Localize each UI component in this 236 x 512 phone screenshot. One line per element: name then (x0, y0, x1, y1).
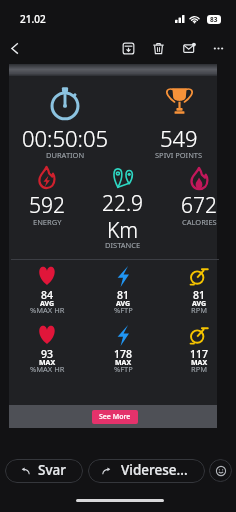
staticText: 21.02 (20, 12, 46, 26)
button[interactable]: Mark unread (179, 38, 199, 58)
staticText: 81 (117, 288, 130, 302)
button[interactable]: More options (208, 38, 228, 58)
staticText: 00:50:05 (22, 123, 109, 153)
staticText: 117 (190, 347, 209, 361)
staticText: Viderese... (121, 461, 188, 479)
staticText: DISTANCE (105, 240, 141, 250)
staticText: AVG (116, 299, 131, 309)
staticText: DURATION (46, 150, 85, 160)
button[interactable]: Emoji reply (209, 459, 232, 482)
staticText: %MAX HR (30, 364, 65, 374)
staticText: 83 (210, 15, 218, 24)
staticText: ENERGY (33, 217, 62, 227)
staticText: CALORIES (182, 217, 217, 227)
button[interactable]: Archive (118, 38, 138, 58)
staticText: RPM (191, 364, 208, 374)
staticText: MAX (191, 358, 208, 368)
button[interactable]: See More (92, 410, 138, 424)
staticText: Km (107, 216, 139, 245)
staticText: 549 (160, 123, 198, 153)
staticText: %FTP (114, 305, 133, 315)
staticText: MAX (39, 358, 56, 368)
staticText: 672 (181, 191, 217, 220)
staticText: AVG (192, 299, 207, 309)
button[interactable]: Back (4, 38, 24, 58)
staticText: 178 (114, 347, 133, 361)
staticText: AVG (40, 299, 55, 309)
staticText: RPM (191, 305, 208, 315)
staticText: 84 (41, 288, 54, 302)
staticText: %FTP (114, 364, 133, 374)
staticText: %MAX HR (30, 305, 65, 315)
button[interactable]: Viderese... (88, 459, 205, 483)
button[interactable]: Svar (5, 459, 83, 483)
staticText: MAX (115, 358, 132, 368)
button[interactable]: Delete (148, 38, 168, 58)
staticText: 93 (41, 347, 54, 361)
staticText: 592 (29, 191, 65, 220)
staticText: SPIVI POINTS (155, 150, 203, 160)
staticText: 81 (193, 288, 206, 302)
staticText: 22.9 (102, 189, 144, 218)
staticText: See More (99, 412, 131, 422)
staticText: Svar (38, 461, 66, 479)
